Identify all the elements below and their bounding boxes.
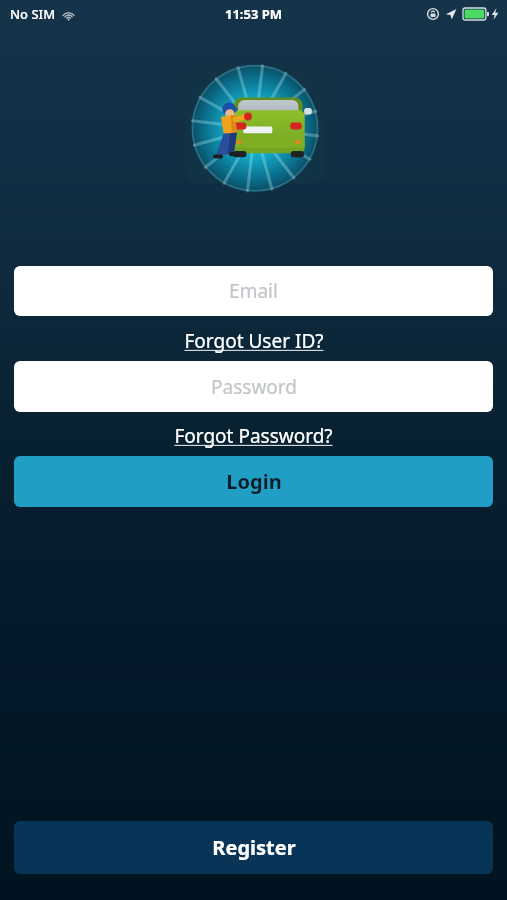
staticText: Login bbox=[226, 468, 282, 495]
button[interactable]: Password bbox=[14, 361, 493, 412]
staticText: Email bbox=[229, 278, 278, 304]
button[interactable]: Forgot Password? bbox=[0, 421, 507, 451]
staticText: Password bbox=[211, 374, 297, 400]
staticText: No SIM bbox=[10, 5, 56, 23]
button[interactable]: Forgot User ID? bbox=[0, 326, 507, 356]
staticText: 11:53 PM bbox=[225, 5, 283, 23]
button[interactable]: Email bbox=[14, 266, 493, 316]
button[interactable]: Login bbox=[14, 456, 493, 507]
staticText: Forgot Password? bbox=[174, 423, 333, 449]
staticText: Forgot User ID? bbox=[184, 328, 324, 354]
staticText: Register bbox=[212, 834, 296, 861]
button[interactable]: Register bbox=[14, 821, 493, 874]
